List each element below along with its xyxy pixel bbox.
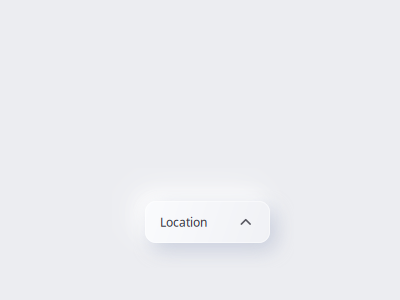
button[interactable]: Location (145, 201, 270, 243)
staticText: Location (160, 214, 207, 230)
